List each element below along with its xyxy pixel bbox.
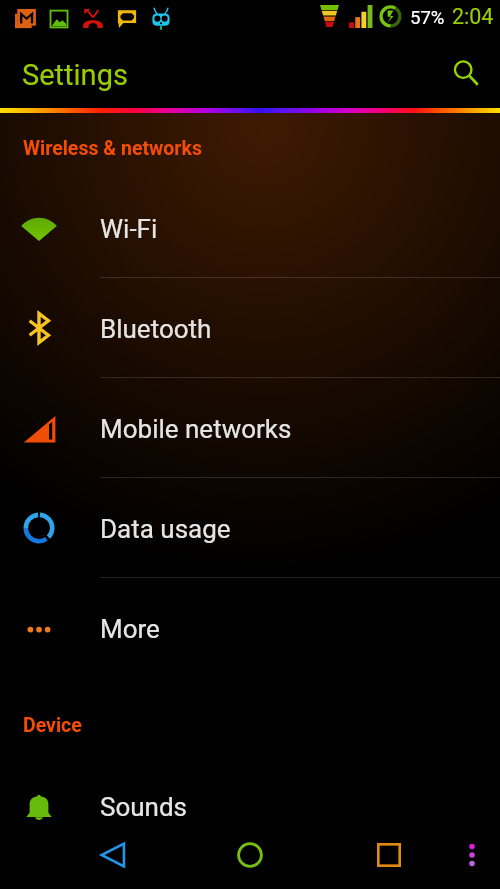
staticText: Bluetooth: [100, 314, 212, 344]
staticText: Wireless & networks: [23, 137, 202, 160]
staticText: Wi-Fi: [100, 214, 158, 244]
staticText: Mobile networks: [100, 414, 292, 444]
button[interactable]: More options: [452, 835, 492, 875]
button[interactable]: Sounds: [0, 756, 500, 856]
staticText: 57%: [410, 7, 445, 29]
button[interactable]: Mobile networks: [0, 378, 500, 478]
button[interactable]: Bluetooth: [0, 278, 500, 378]
staticText: Settings: [22, 58, 128, 92]
staticText: Device: [23, 714, 82, 737]
staticText: 2:04: [452, 4, 494, 29]
button[interactable]: Search: [442, 49, 490, 97]
staticText: Sounds: [100, 792, 188, 822]
button[interactable]: Wi-Fi: [0, 178, 500, 278]
staticText: Data usage: [100, 514, 231, 544]
button[interactable]: More: [0, 578, 500, 678]
button[interactable]: Recent apps: [365, 831, 413, 879]
button[interactable]: Back: [89, 831, 137, 879]
button[interactable]: Data usage: [0, 478, 500, 578]
staticText: More: [100, 614, 160, 644]
button[interactable]: Home: [226, 831, 274, 879]
